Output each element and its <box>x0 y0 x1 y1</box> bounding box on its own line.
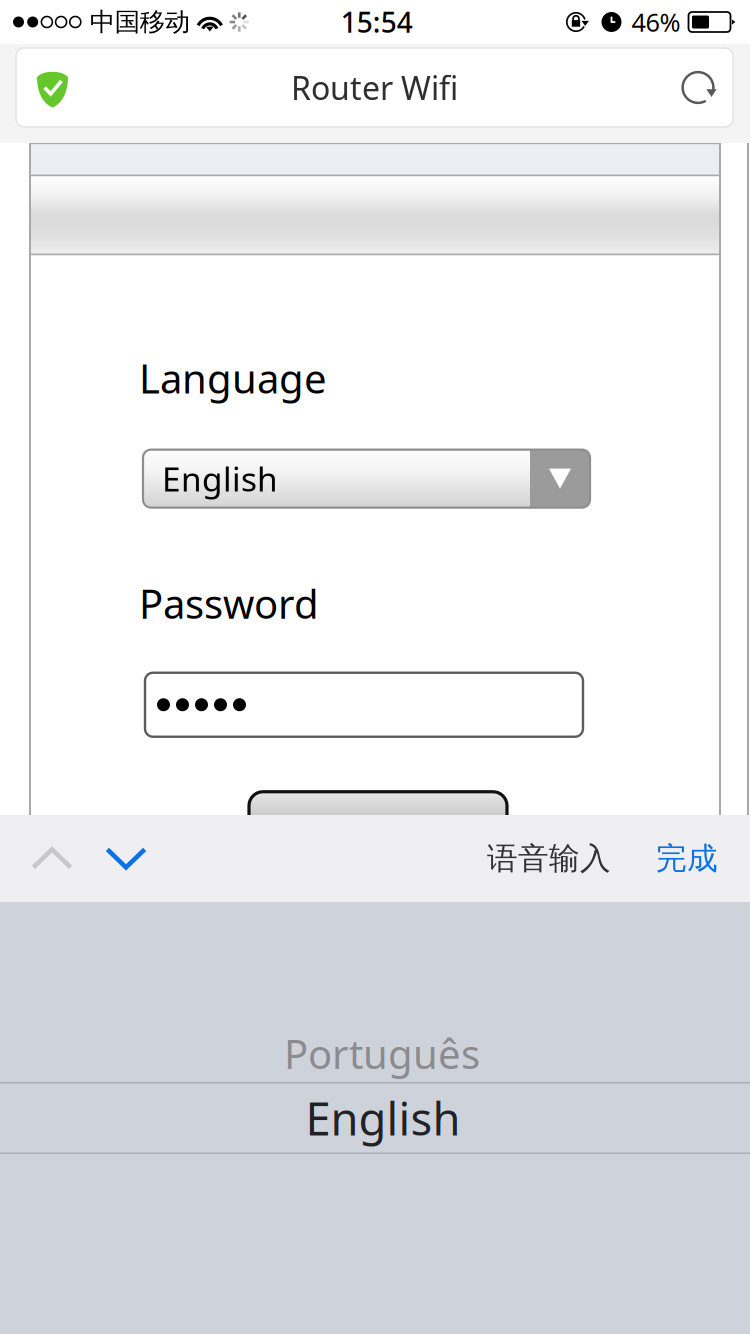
button[interactable]: 完成 <box>611 815 750 902</box>
staticText: Language <box>139 351 327 405</box>
staticText: English <box>305 1088 460 1148</box>
button[interactable]: Next field <box>74 815 148 902</box>
button[interactable]: Secure connection <box>16 48 126 127</box>
staticText: 15:54 <box>341 3 413 41</box>
button[interactable]: Português <box>0 1025 750 1082</box>
staticText: 46% <box>631 5 680 39</box>
staticText: English <box>162 456 278 501</box>
staticText: Password <box>139 577 319 630</box>
staticText: 完成 <box>656 840 718 877</box>
staticText: Português <box>284 1027 480 1080</box>
staticText: 中国移动 <box>90 6 190 37</box>
staticText: Router Wifi <box>291 66 458 109</box>
button[interactable]: Previous field <box>0 815 74 902</box>
staticText: 语音输入 <box>487 840 611 877</box>
button[interactable]: 语音输入 <box>466 815 611 902</box>
button[interactable]: English <box>0 1083 750 1152</box>
button[interactable]: English <box>143 450 590 508</box>
button[interactable]: Refresh <box>623 48 733 127</box>
